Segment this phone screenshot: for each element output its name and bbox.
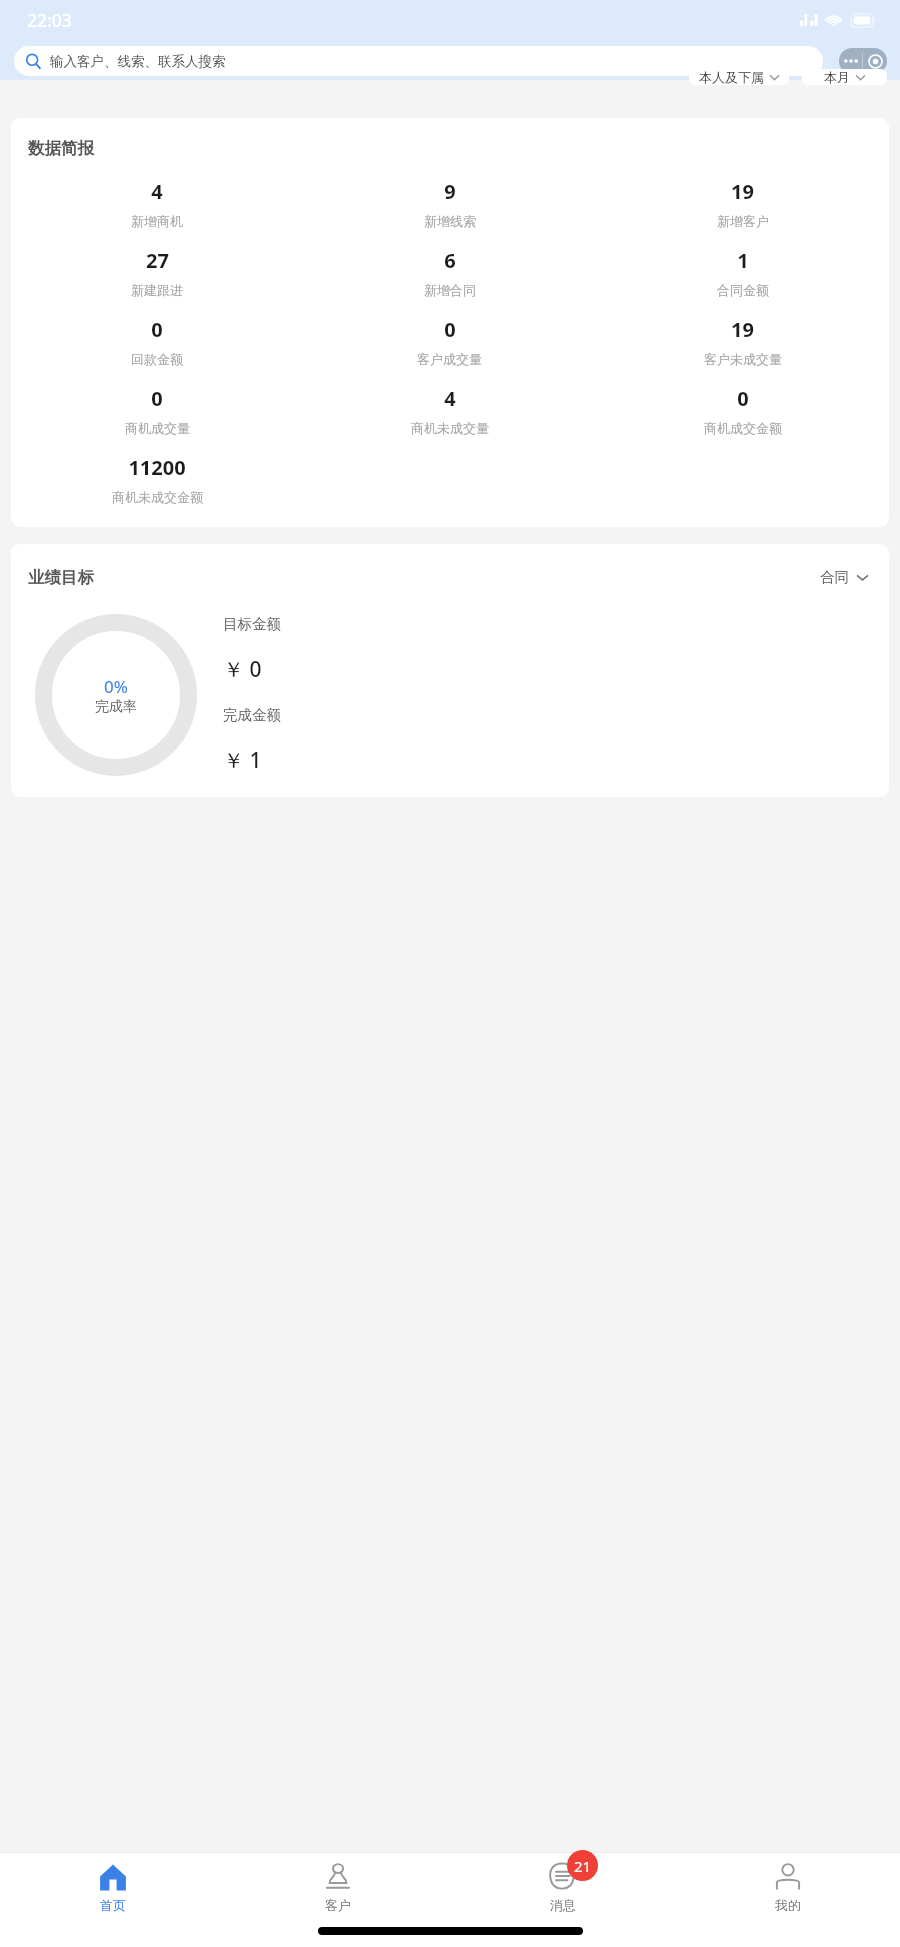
staticText: 合同金额 — [717, 282, 769, 298]
staticText: 客户 — [325, 1897, 351, 1913]
button[interactable]: 9 — [303, 178, 596, 229]
staticText: 业绩目标 — [28, 567, 94, 588]
staticText: 客户成交量 — [417, 351, 482, 367]
staticText: 本月 — [824, 69, 850, 85]
staticText: 22:03 — [27, 8, 72, 32]
staticText: 21 — [574, 1856, 592, 1876]
staticText: 商机成交量 — [125, 420, 190, 436]
staticText: 首页 — [100, 1897, 126, 1913]
staticText: 6 — [444, 247, 456, 274]
staticText: 4 — [444, 385, 456, 412]
staticText: 完成率 — [95, 698, 137, 716]
button[interactable]: 本人及下属 — [689, 69, 789, 85]
staticText: 回款金额 — [131, 351, 183, 367]
staticText: 19 — [731, 316, 754, 343]
staticText: 0 — [151, 385, 163, 412]
staticText: 商机未成交金额 — [112, 489, 203, 505]
staticText: ￥ 0 — [223, 655, 262, 684]
staticText: 本人及下属 — [699, 69, 764, 85]
button[interactable]: 本月 — [802, 69, 887, 85]
button[interactable]: 我的 — [675, 1853, 900, 1921]
button[interactable]: 0 — [596, 385, 889, 436]
staticText: 0 — [737, 385, 749, 412]
staticText: 新增合同 — [424, 282, 476, 298]
button[interactable]: 19 — [596, 316, 889, 367]
staticText: 0 — [151, 316, 163, 343]
staticText: 9 — [444, 178, 456, 205]
staticText: 商机成交金额 — [704, 420, 782, 436]
staticText: 完成金额 — [223, 706, 281, 724]
button[interactable]: 6 — [303, 247, 596, 298]
button[interactable]: 27 — [11, 247, 303, 298]
button[interactable]: 4 — [11, 178, 303, 229]
staticText: 输入客户、线索、联系人搜索 — [50, 53, 226, 70]
staticText: 目标金额 — [223, 615, 281, 633]
button[interactable]: 0 — [11, 385, 303, 436]
staticText: 数据简报 — [28, 138, 94, 159]
staticText: 消息 — [550, 1897, 576, 1913]
staticText: 新增商机 — [131, 213, 183, 229]
staticText: 4 — [151, 178, 163, 205]
button[interactable]: 19 — [596, 178, 889, 229]
button[interactable]: 0 — [11, 316, 303, 367]
button[interactable]: 0 — [303, 316, 596, 367]
button[interactable]: 1 — [596, 247, 889, 298]
button[interactable]: 输入客户、线索、联系人搜索 — [14, 46, 823, 76]
button[interactable]: 客户 — [225, 1853, 450, 1921]
staticText: 0 — [444, 316, 456, 343]
staticText: 合同 — [820, 568, 849, 586]
button[interactable]: 4 — [303, 385, 596, 436]
staticText: 新建跟进 — [131, 282, 183, 298]
staticText: 新增客户 — [717, 213, 769, 229]
staticText: 商机未成交量 — [411, 420, 489, 436]
staticText: 新增线索 — [424, 213, 476, 229]
button[interactable]: 11200 — [11, 454, 303, 505]
staticText: 27 — [146, 247, 169, 274]
button[interactable]: 首页 — [0, 1853, 225, 1921]
staticText: 19 — [731, 178, 754, 205]
button[interactable]: 合同 — [816, 564, 872, 590]
staticText: 0% — [104, 675, 128, 698]
staticText: 1 — [737, 247, 749, 274]
button[interactable]: 21 — [450, 1853, 675, 1921]
staticText: 我的 — [775, 1897, 801, 1913]
staticText: 11200 — [128, 454, 186, 481]
staticText: ￥ 1 — [223, 746, 262, 775]
staticText: 客户未成交量 — [704, 351, 782, 367]
button[interactable]: Mini program menu — [839, 48, 887, 74]
